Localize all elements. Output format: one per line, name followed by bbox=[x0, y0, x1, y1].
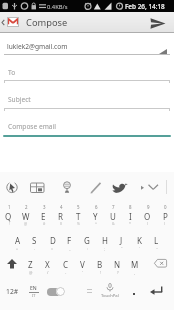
staticText: " bbox=[121, 246, 123, 251]
button[interactable] bbox=[4, 36, 170, 55]
staticText: IT bbox=[32, 293, 36, 298]
staticText: luklek2@gmail.com bbox=[7, 42, 68, 51]
staticText: U bbox=[110, 211, 116, 222]
staticText: Compose email bbox=[8, 122, 56, 131]
button[interactable]: U bbox=[104, 210, 121, 223]
staticText: / bbox=[47, 270, 49, 275]
button[interactable]: I bbox=[122, 210, 139, 223]
staticText: 0 bbox=[164, 204, 167, 210]
button[interactable]: V bbox=[74, 258, 91, 271]
staticText: @ bbox=[29, 270, 33, 275]
button[interactable] bbox=[28, 178, 50, 196]
button[interactable] bbox=[4, 88, 170, 108]
staticText: = bbox=[51, 246, 54, 251]
staticText: V bbox=[80, 259, 85, 270]
staticText: 0.4KB/s bbox=[47, 3, 68, 11]
staticText: ^ bbox=[95, 221, 98, 226]
staticText: R bbox=[58, 211, 63, 222]
staticText: M bbox=[131, 259, 139, 270]
button[interactable]: Z bbox=[22, 258, 39, 271]
staticText: S bbox=[32, 235, 37, 246]
staticText: Subject bbox=[8, 95, 31, 104]
button[interactable] bbox=[138, 178, 160, 196]
staticText: @ bbox=[24, 221, 28, 226]
staticText: F bbox=[67, 235, 72, 246]
button[interactable] bbox=[3, 115, 171, 137]
staticText: G bbox=[84, 235, 90, 246]
button[interactable]: Q bbox=[0, 210, 17, 223]
staticText: O bbox=[144, 211, 151, 222]
staticText: Z bbox=[28, 259, 33, 270]
staticText: : bbox=[87, 246, 88, 251]
button[interactable] bbox=[146, 280, 174, 300]
staticText: ' bbox=[82, 270, 83, 275]
staticText: W bbox=[22, 211, 30, 222]
button[interactable]: J bbox=[113, 234, 130, 247]
staticText: T bbox=[76, 211, 81, 222]
button[interactable] bbox=[108, 178, 134, 196]
staticText: & bbox=[112, 221, 115, 226]
button[interactable]: G bbox=[78, 234, 95, 247]
staticText: 12# bbox=[6, 287, 19, 296]
button[interactable] bbox=[0, 256, 21, 271]
button[interactable]: Y bbox=[87, 210, 104, 223]
staticText: N bbox=[114, 259, 121, 270]
button[interactable] bbox=[26, 283, 44, 299]
staticText: B bbox=[97, 259, 103, 270]
button[interactable]: D bbox=[44, 234, 61, 247]
staticText: A bbox=[15, 235, 21, 246]
button[interactable]: M bbox=[126, 258, 143, 271]
button[interactable]: P bbox=[157, 210, 174, 223]
button[interactable]: H bbox=[96, 234, 113, 247]
button[interactable]: C bbox=[57, 258, 74, 271]
button[interactable] bbox=[47, 288, 63, 296]
staticText: X bbox=[45, 259, 50, 270]
button[interactable] bbox=[86, 178, 108, 196]
staticText: E bbox=[41, 211, 46, 222]
staticText: Q bbox=[5, 211, 12, 222]
staticText: - bbox=[65, 270, 67, 275]
button[interactable]: W bbox=[17, 210, 34, 223]
staticText: , bbox=[134, 270, 136, 275]
staticText: I bbox=[129, 211, 132, 222]
staticText: 2 bbox=[25, 204, 28, 210]
button[interactable] bbox=[2, 178, 24, 196]
button[interactable] bbox=[150, 256, 174, 271]
staticText: 9 bbox=[147, 204, 150, 210]
button[interactable]: N bbox=[109, 258, 126, 271]
staticText: P bbox=[163, 211, 168, 222]
button[interactable] bbox=[4, 60, 170, 80]
staticText: ! bbox=[100, 270, 102, 275]
staticText: 3 bbox=[43, 204, 46, 210]
staticText: D bbox=[50, 235, 56, 246]
staticText: EN bbox=[30, 285, 37, 292]
staticText: 7 bbox=[112, 204, 115, 210]
button[interactable]: L bbox=[148, 234, 165, 247]
button[interactable]: X bbox=[39, 258, 56, 271]
button[interactable]: O bbox=[139, 210, 156, 223]
staticText: ; bbox=[104, 246, 105, 251]
button[interactable]: S bbox=[26, 234, 43, 247]
staticText: % bbox=[77, 221, 80, 226]
staticText: $ bbox=[60, 221, 63, 226]
staticText: 8 bbox=[129, 204, 132, 210]
button[interactable] bbox=[56, 178, 78, 196]
button[interactable] bbox=[0, 12, 24, 33]
button[interactable]: R bbox=[52, 210, 69, 223]
staticText: * bbox=[129, 221, 131, 226]
staticText: ) bbox=[164, 221, 166, 226]
button[interactable]: E bbox=[35, 210, 52, 223]
button[interactable] bbox=[128, 283, 142, 299]
button[interactable]: T bbox=[70, 210, 87, 223]
button[interactable] bbox=[146, 14, 170, 31]
button[interactable]: A bbox=[9, 234, 26, 247]
button[interactable]: B bbox=[91, 258, 108, 271]
button[interactable]: 12# bbox=[0, 283, 24, 299]
button[interactable]: F bbox=[61, 234, 78, 247]
staticText: ( bbox=[147, 221, 149, 226]
staticText: ' bbox=[139, 246, 140, 251]
staticText: TouchPal bbox=[101, 293, 119, 299]
button[interactable] bbox=[70, 280, 130, 300]
staticText: 5 bbox=[77, 204, 80, 210]
button[interactable]: K bbox=[131, 234, 148, 247]
